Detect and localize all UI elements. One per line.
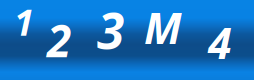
staticText: 1 [14,0,34,46]
staticText: 2 [47,11,71,69]
staticText: 4 [208,14,232,71]
staticText: M [144,0,182,56]
staticText: 3 [97,0,124,62]
